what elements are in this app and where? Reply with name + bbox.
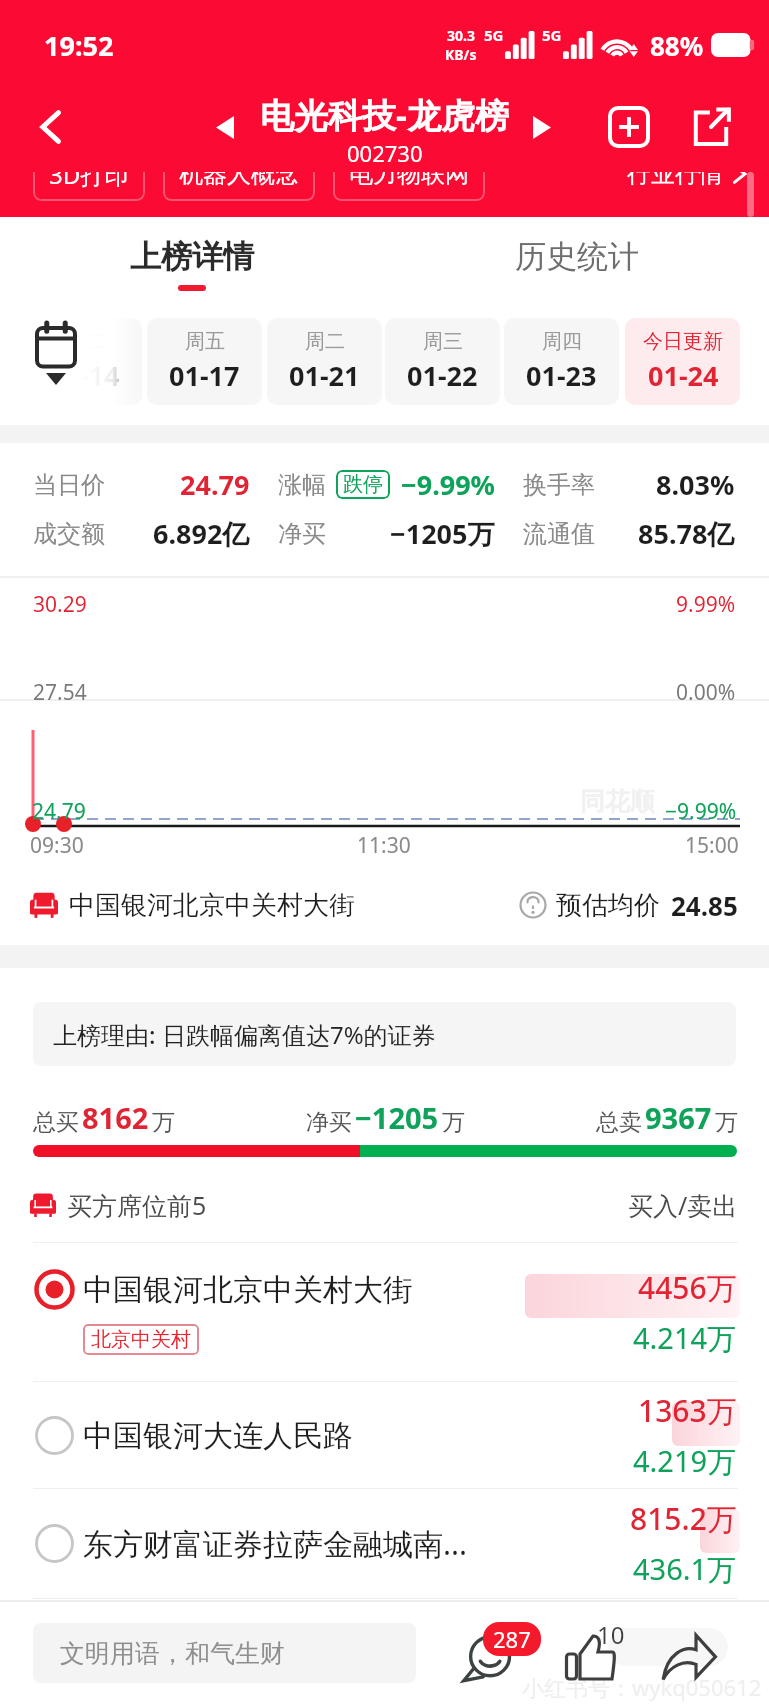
staticText: −9.99%	[665, 797, 737, 826]
staticText: 周二	[65, 329, 105, 354]
staticText: 中国银河北京中关村大街	[83, 1271, 413, 1309]
staticText: 总卖	[596, 1108, 642, 1137]
button[interactable]: Previous stock	[208, 110, 242, 144]
staticText: 买入/卖出	[628, 1188, 738, 1222]
staticText: 8162	[82, 1098, 149, 1137]
button[interactable]: 今日更新	[625, 318, 740, 405]
button[interactable]: 周三	[385, 318, 500, 405]
staticText: 24.79	[32, 797, 86, 826]
staticText: 北京中关村	[91, 1327, 191, 1352]
button[interactable]: Share	[654, 1624, 724, 1694]
button[interactable]: Back	[22, 98, 80, 156]
staticText: 万	[152, 1108, 175, 1137]
staticText: 24.79	[180, 466, 250, 503]
staticText: 中国银河北京中关村大街	[69, 889, 355, 922]
button[interactable]: Select date	[28, 322, 84, 406]
staticText: 30.29	[33, 590, 87, 619]
staticText: 287	[493, 1624, 531, 1654]
staticText: 1363万	[638, 1390, 737, 1431]
staticText: 周五	[185, 329, 225, 354]
staticText: 上榜理由:	[53, 1018, 162, 1051]
staticText: 小红书号：wykq050612	[522, 1672, 762, 1702]
staticText: 日跌幅偏离值达7%的证券	[162, 1018, 436, 1051]
button[interactable]: 东方财富证券拉萨金融城南...	[0, 1489, 769, 1598]
staticText: 万	[715, 1108, 738, 1137]
staticText: 成交额	[33, 519, 105, 549]
staticText: 0.00%	[676, 678, 736, 707]
staticText: 周二	[305, 329, 345, 354]
staticText: −9.99%	[401, 466, 495, 503]
staticText: 8.03%	[656, 466, 735, 503]
staticText: 跌停	[343, 472, 383, 497]
staticText: 01-21	[289, 357, 360, 394]
staticText: 总买	[33, 1108, 79, 1137]
staticText: 6.892亿	[153, 515, 250, 552]
staticText: 3D打印	[49, 158, 129, 191]
staticText: 9.99%	[676, 590, 736, 619]
staticText: 436.1万	[633, 1549, 737, 1589]
button[interactable]: 机器人概念	[179, 147, 299, 201]
staticText: 24.85	[671, 888, 738, 923]
button[interactable]: Comments	[459, 1628, 519, 1688]
button[interactable]: 文明用语，和气生财	[33, 1623, 416, 1683]
staticText: 电光科技-龙虎榜	[260, 92, 509, 138]
staticText: 今日更新	[643, 329, 723, 354]
button[interactable]: 周二	[267, 318, 382, 405]
button[interactable]: 3D打印	[49, 147, 129, 201]
button[interactable]: 上榜详情	[0, 217, 384, 300]
staticText: 10	[597, 1618, 625, 1651]
staticText: 机器人概念	[179, 159, 299, 189]
staticText: 中国银河大连人民路	[83, 1417, 353, 1455]
staticText: 涨幅	[278, 470, 326, 500]
staticText: 流通值	[523, 519, 595, 549]
staticText: 002730	[347, 138, 423, 168]
staticText: 27.54	[33, 678, 87, 707]
button[interactable]: Share	[682, 98, 740, 156]
staticText: 01-17	[169, 357, 240, 394]
staticText: 85.78亿	[638, 515, 735, 552]
button[interactable]: Next stock	[525, 110, 559, 144]
staticText: 09:30	[30, 831, 84, 860]
staticText: 15:00	[685, 831, 739, 860]
staticText: 01-14	[49, 357, 120, 394]
staticText: 01-23	[526, 357, 597, 394]
staticText: 历史统计	[515, 237, 639, 276]
staticText: −1205万	[390, 515, 495, 552]
button[interactable]: Add to watchlist	[600, 98, 658, 156]
staticText: 当日价	[33, 470, 105, 500]
staticText: 预估均价	[556, 889, 660, 922]
button[interactable]: 周五	[147, 318, 262, 405]
staticText: 周三	[423, 329, 463, 354]
staticText: 文明用语，和气生财	[60, 1638, 285, 1669]
button[interactable]: 电力物联网	[349, 147, 469, 201]
staticText: 5G	[542, 25, 562, 45]
staticText: 东方财富证券拉萨金融城南...	[83, 1523, 468, 1564]
button[interactable]: 中国银河大连人民路	[0, 1382, 769, 1488]
staticText: 815.2万	[630, 1498, 737, 1539]
staticText: KB/s	[445, 45, 477, 64]
staticText: 4456万	[638, 1267, 737, 1308]
staticText: 11:30	[357, 831, 411, 860]
staticText: 19:52	[44, 27, 114, 64]
staticText: 周四	[542, 329, 582, 354]
staticText: −1205	[355, 1098, 439, 1137]
staticText: 01-24	[648, 357, 719, 394]
staticText: 88%	[650, 28, 704, 63]
button[interactable]: Like	[556, 1624, 624, 1692]
staticText: 净买	[278, 519, 326, 549]
button[interactable]: 周二	[27, 318, 142, 405]
button[interactable]: 中国银河北京中关村大街	[0, 1243, 769, 1381]
button[interactable]: 中国银河北京中关村大街	[30, 865, 738, 945]
staticText: 4.219万	[633, 1441, 737, 1481]
button[interactable]: 历史统计	[384, 217, 769, 300]
staticText: 9367	[645, 1098, 712, 1137]
button[interactable]: 周四	[504, 318, 619, 405]
staticText: 万	[442, 1108, 465, 1137]
staticText: 行业行情	[627, 159, 723, 189]
staticText: 30.3	[447, 26, 475, 45]
staticText: 5G	[484, 25, 504, 45]
staticText: 同花顺	[580, 786, 655, 817]
staticText: 电力物联网	[349, 159, 469, 189]
staticText: 换手率	[523, 470, 595, 500]
staticText: 净买	[306, 1108, 352, 1137]
